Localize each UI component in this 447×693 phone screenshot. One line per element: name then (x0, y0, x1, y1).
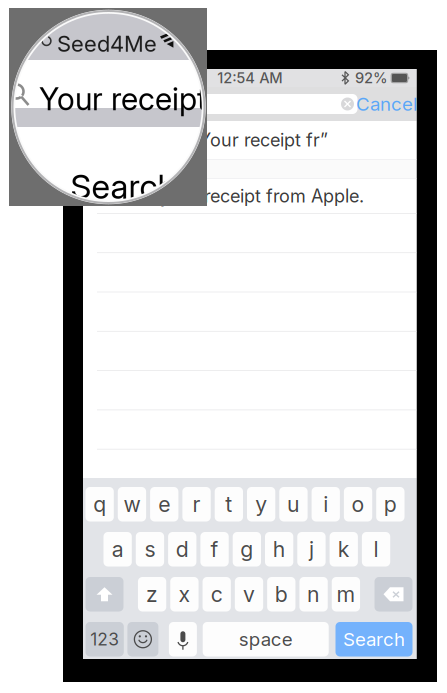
button[interactable]: g (233, 532, 261, 566)
button[interactable]: t (215, 487, 243, 521)
button[interactable]: p (376, 487, 404, 521)
staticText: Search for “Your receipt fr” (97, 129, 328, 151)
button[interactable]: d (168, 532, 196, 566)
button[interactable]: n (299, 577, 328, 611)
staticText: e (158, 491, 170, 517)
button[interactable]: y (247, 487, 275, 521)
staticText: m (336, 581, 355, 607)
button[interactable]: z (138, 577, 166, 611)
button[interactable]: m (332, 577, 360, 611)
button[interactable]: w (118, 487, 146, 521)
button[interactable]: Cancel (357, 87, 416, 121)
staticText: x (178, 581, 190, 607)
button[interactable]: r (182, 487, 211, 521)
button[interactable]: e (150, 487, 178, 521)
staticText: q (93, 491, 106, 517)
button[interactable]: k (330, 532, 358, 566)
staticText: s (144, 536, 155, 562)
staticText: z (146, 581, 158, 607)
button[interactable]: x (170, 577, 198, 611)
button[interactable]: j (297, 532, 326, 566)
button[interactable]: Emoji (127, 622, 158, 656)
button[interactable]: Search for “Your receipt fr” (83, 121, 416, 159)
staticText: o (352, 491, 365, 517)
button[interactable]: u (279, 487, 308, 521)
staticText: p (384, 491, 397, 517)
button[interactable]: q (85, 487, 114, 521)
staticText: Here is your receipt from Apple. (97, 185, 364, 207)
staticText: u (287, 491, 300, 517)
staticText: Search (343, 628, 405, 651)
staticText: c (211, 581, 223, 607)
staticText: v (243, 581, 255, 607)
button[interactable]: s (136, 532, 164, 566)
staticText: y (255, 491, 267, 517)
button[interactable]: Dictate (169, 622, 197, 656)
button[interactable]: v (235, 577, 263, 611)
staticText: b (275, 581, 288, 607)
staticText: 92% (355, 69, 388, 87)
button[interactable]: h (265, 532, 293, 566)
button[interactable]: f (200, 532, 229, 566)
button[interactable]: Search (335, 622, 412, 656)
staticText: d (176, 536, 189, 562)
staticText: 12:54 AM (217, 69, 282, 87)
staticText: Search (70, 166, 176, 207)
staticText: i (323, 491, 328, 517)
button[interactable]: Shift (85, 577, 123, 611)
staticText: w (123, 491, 140, 517)
button[interactable]: o (344, 487, 372, 521)
staticText: l (374, 536, 379, 562)
staticText: 123 (90, 629, 119, 650)
button[interactable]: Here is your receipt from Apple. (83, 179, 416, 213)
button[interactable]: Delete (374, 577, 412, 611)
button[interactable]: c (202, 577, 231, 611)
button[interactable]: i (312, 487, 340, 521)
staticText: Your receipt (39, 80, 207, 118)
staticText: Cancel (356, 93, 418, 115)
staticText: Seed4Me (57, 30, 157, 57)
staticText: f (210, 536, 218, 562)
staticText: r (192, 491, 200, 517)
staticText: t (225, 491, 232, 517)
staticText: a (112, 536, 124, 562)
staticText: n (307, 581, 320, 607)
staticText: h (273, 536, 286, 562)
button[interactable]: b (267, 577, 295, 611)
button[interactable]: 123 (85, 622, 124, 656)
staticText: g (240, 536, 253, 562)
button[interactable]: a (103, 532, 132, 566)
staticText: space (239, 628, 293, 651)
button[interactable]: space (203, 622, 329, 656)
button[interactable]: l (362, 532, 390, 566)
staticText: k (338, 536, 350, 562)
button[interactable]: Clear text (341, 97, 354, 110)
staticText: j (309, 536, 314, 562)
